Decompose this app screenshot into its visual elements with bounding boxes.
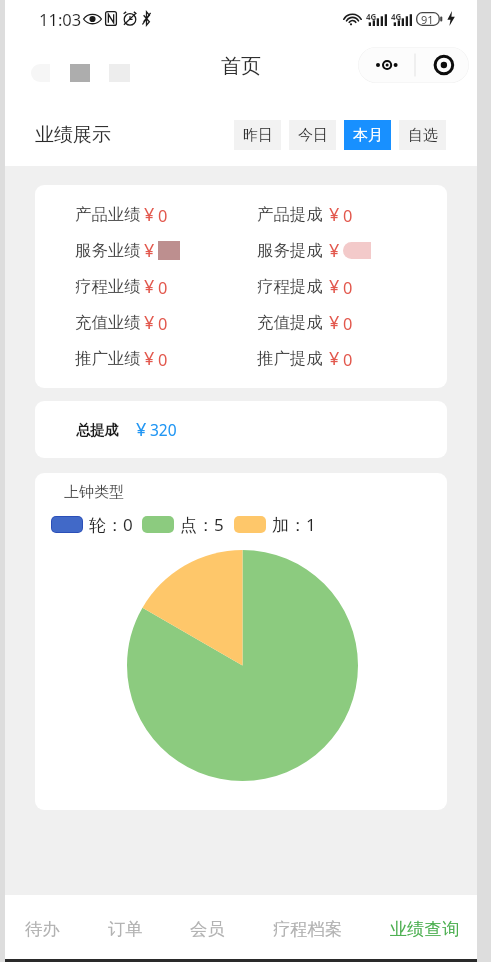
button[interactable]: 业绩查询 bbox=[390, 895, 460, 962]
staticText: 业绩查询 bbox=[390, 918, 460, 940]
staticText: 4G bbox=[391, 11, 402, 22]
staticText: 本月 bbox=[353, 126, 383, 145]
staticText: 订单 bbox=[108, 918, 143, 940]
staticText: 0 bbox=[343, 276, 353, 298]
staticText: 11:03 bbox=[39, 8, 82, 30]
staticText: 首页 bbox=[221, 54, 261, 79]
staticText: ¥ bbox=[329, 202, 340, 227]
staticText: 充值业绩 bbox=[75, 312, 141, 333]
staticText: ¥ bbox=[329, 346, 340, 371]
staticText: 服务提成 bbox=[257, 240, 323, 261]
staticText: ¥ bbox=[144, 238, 155, 263]
staticText: 业绩展示 bbox=[35, 123, 111, 147]
staticText: ¥ bbox=[329, 274, 340, 299]
staticText: 0 bbox=[343, 348, 353, 370]
staticText: 0 bbox=[343, 312, 353, 334]
staticText: 总提成 bbox=[76, 421, 119, 439]
staticText: 今日 bbox=[298, 126, 328, 145]
staticText: 上钟类型 bbox=[64, 483, 124, 502]
staticText: 轮：0 bbox=[89, 513, 133, 536]
button[interactable]: 疗程档案 bbox=[273, 895, 343, 962]
staticText: ¥ bbox=[144, 346, 155, 371]
staticText: ¥ bbox=[144, 202, 155, 227]
staticText: ¥ bbox=[329, 310, 340, 335]
staticText: 0 bbox=[343, 204, 353, 226]
button[interactable]: 自选 bbox=[399, 120, 446, 150]
staticText: ¥ bbox=[144, 310, 155, 335]
button[interactable]: 昨日 bbox=[234, 120, 281, 150]
staticText: 会员 bbox=[190, 918, 225, 940]
staticText: 昨日 bbox=[243, 126, 273, 145]
button[interactable]: 待办 bbox=[25, 895, 60, 962]
button[interactable]: 本月 bbox=[344, 120, 391, 150]
staticText: 疗程档案 bbox=[273, 918, 343, 940]
staticText: 0 bbox=[158, 348, 168, 370]
button[interactable]: 今日 bbox=[289, 120, 336, 150]
staticText: 充值提成 bbox=[257, 312, 323, 333]
staticText: 推广业绩 bbox=[75, 348, 141, 369]
staticText: ¥ bbox=[144, 274, 155, 299]
staticText: 0 bbox=[158, 276, 168, 298]
staticText: 待办 bbox=[25, 918, 60, 940]
button[interactable]: More options bbox=[358, 47, 469, 83]
staticText: 0 bbox=[158, 312, 168, 334]
staticText: 自选 bbox=[408, 126, 438, 145]
staticText: 疗程业绩 bbox=[75, 276, 141, 297]
staticText: 推广提成 bbox=[257, 348, 323, 369]
staticText: 疗程提成 bbox=[257, 276, 323, 297]
staticText: 320 bbox=[150, 419, 177, 440]
staticText: 产品业绩 bbox=[75, 204, 141, 225]
staticText: ¥ bbox=[329, 238, 340, 263]
staticText: 0 bbox=[158, 204, 168, 226]
staticText: 91 bbox=[421, 12, 434, 26]
staticText: ¥ bbox=[136, 417, 147, 442]
button[interactable]: 订单 bbox=[108, 895, 143, 962]
staticText: 点：5 bbox=[180, 513, 224, 536]
staticText: 服务业绩 bbox=[75, 240, 141, 261]
staticText: 产品提成 bbox=[257, 204, 323, 225]
staticText: 4G bbox=[366, 11, 377, 22]
staticText: 加：1 bbox=[272, 513, 316, 536]
button[interactable]: 会员 bbox=[190, 895, 225, 962]
